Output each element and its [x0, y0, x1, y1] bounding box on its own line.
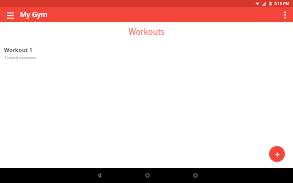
- button[interactable]: Add workout: [269, 146, 285, 162]
- staticText: 1 timed exercises: [4, 55, 37, 60]
- staticText: Workout 1: [4, 46, 33, 53]
- button[interactable]: Open navigation drawer: [5, 10, 15, 20]
- staticText: My Gym: [20, 10, 48, 20]
- button[interactable]: More options: [279, 9, 291, 21]
- button[interactable]: Workout 1: [0, 45, 293, 62]
- button[interactable]: Back: [75, 168, 123, 183]
- button[interactable]: Home: [123, 168, 171, 183]
- button[interactable]: Recent apps: [171, 168, 219, 183]
- staticText: 7:15 PM: [274, 1, 290, 6]
- staticText: Workouts: [0, 26, 293, 37]
